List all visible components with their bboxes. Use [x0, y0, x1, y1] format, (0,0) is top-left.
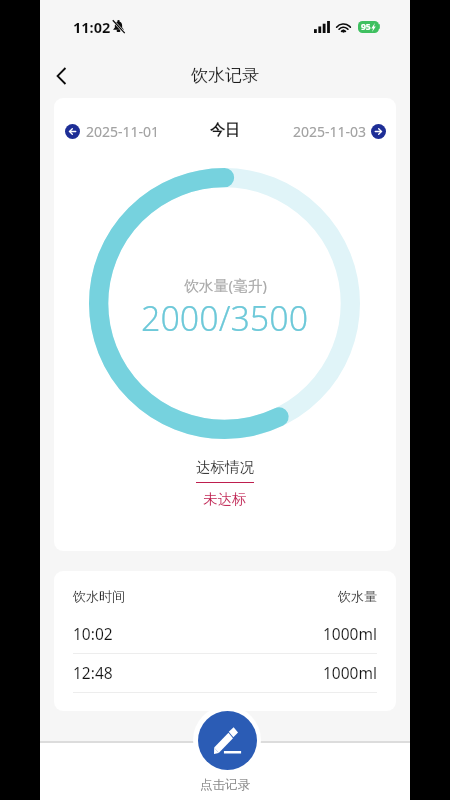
staticText: 今日	[210, 121, 240, 140]
staticText: 12:48	[73, 662, 113, 683]
staticText: 2025-11-03	[293, 122, 367, 141]
staticText: 饮水量	[338, 588, 377, 604]
staticText: 饮水时间	[73, 588, 125, 604]
button[interactable]: 10:02	[54, 617, 396, 649]
staticText: 2000/3500	[141, 295, 309, 341]
staticText: 1000ml	[323, 623, 377, 644]
staticText: 饮水记录	[191, 65, 259, 86]
button[interactable]: 2025-11-01	[62, 115, 163, 147]
button[interactable]: Add record	[198, 711, 257, 770]
staticText: 2025-11-01	[86, 122, 160, 141]
staticText: 95	[361, 21, 371, 33]
staticText: 饮水量(毫升)	[184, 275, 267, 295]
staticText: 1000ml	[323, 662, 377, 683]
staticText: 未达标	[203, 490, 247, 508]
staticText: 10:02	[73, 623, 113, 644]
staticText: 11:02	[73, 17, 111, 37]
staticText: 达标情况	[196, 458, 254, 476]
button[interactable]: 2025-11-03	[290, 115, 389, 147]
button[interactable]: Back	[40, 56, 82, 96]
button[interactable]: 今日	[200, 115, 250, 146]
staticText: 点击记录	[200, 777, 250, 793]
button[interactable]: 12:48	[54, 656, 396, 688]
